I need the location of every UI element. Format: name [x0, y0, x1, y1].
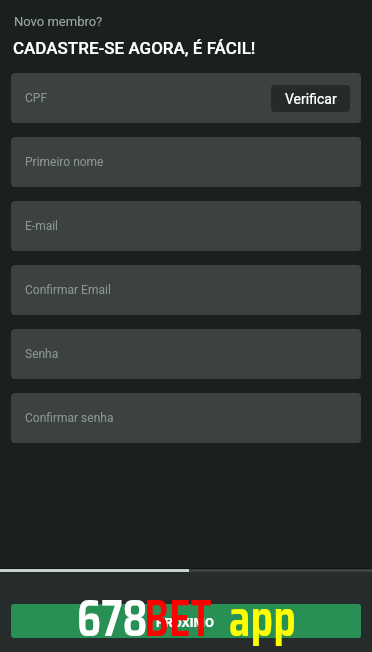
staticText: Confirmar Email [25, 283, 111, 297]
button[interactable] [11, 604, 361, 638]
staticText: Confirmar senha [25, 411, 114, 425]
button[interactable]: E-mail [11, 201, 361, 251]
staticText: BET [144, 578, 212, 652]
staticText: PRÓXIMO [156, 615, 214, 630]
staticText: CADASTRE-SE AGORA, É FÁCIL! [13, 38, 256, 58]
button[interactable]: Confirmar senha [11, 393, 361, 443]
button[interactable]: CPF [11, 73, 361, 123]
button[interactable]: Primeiro nome [11, 137, 361, 187]
staticText: 678 [77, 578, 148, 652]
staticText: Senha [25, 347, 59, 361]
button[interactable]: Senha [11, 329, 361, 379]
staticText: Primeiro nome [25, 155, 104, 169]
staticText: Novo membro? [14, 14, 103, 29]
staticText: Verificar [285, 91, 337, 107]
button[interactable]: Confirmar Email [11, 265, 361, 315]
staticText: app [229, 578, 296, 652]
staticText: CPF [25, 91, 48, 105]
button[interactable]: Verificar [271, 85, 350, 112]
staticText: E-mail [25, 219, 59, 233]
